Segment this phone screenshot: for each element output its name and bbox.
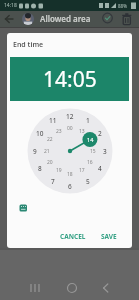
staticText: 22 bbox=[47, 136, 53, 143]
button[interactable] bbox=[19, 204, 28, 212]
staticText: 9 bbox=[33, 147, 37, 156]
staticText: SAVE bbox=[101, 232, 117, 241]
staticText: 17 bbox=[79, 167, 85, 174]
button[interactable]: SAVE bbox=[96, 230, 122, 243]
staticText: 8 bbox=[38, 164, 42, 173]
button[interactable]: CANCEL bbox=[57, 230, 89, 243]
staticText: 12 bbox=[66, 112, 74, 121]
button[interactable]: 14:05 bbox=[10, 57, 129, 101]
staticText: 14:18 bbox=[4, 2, 17, 9]
button[interactable] bbox=[101, 12, 114, 25]
button[interactable] bbox=[99, 281, 113, 295]
staticText: Allowed area bbox=[40, 13, 91, 24]
staticText: 19 bbox=[56, 167, 62, 174]
staticText: 13 bbox=[79, 128, 85, 135]
staticText: 2 bbox=[98, 129, 102, 138]
staticText: 16 bbox=[87, 159, 93, 166]
staticText: 15 bbox=[90, 148, 96, 155]
staticText: 23 bbox=[56, 128, 62, 135]
staticText: 11 bbox=[49, 116, 57, 125]
button[interactable] bbox=[2, 12, 16, 26]
staticText: 21 bbox=[44, 148, 50, 155]
staticText: 88% bbox=[118, 3, 127, 9]
staticText: 14:05 bbox=[43, 65, 97, 94]
staticText: 7 bbox=[51, 177, 55, 186]
staticText: 3 bbox=[103, 147, 107, 156]
button[interactable] bbox=[28, 281, 42, 295]
staticText: 1 bbox=[86, 116, 90, 125]
staticText: 18 bbox=[67, 171, 73, 178]
staticText: CANCEL bbox=[60, 232, 86, 241]
button[interactable] bbox=[65, 281, 79, 295]
staticText: 6 bbox=[68, 182, 72, 191]
staticText: 10 bbox=[36, 129, 44, 138]
button[interactable] bbox=[120, 12, 134, 26]
staticText: 14 bbox=[87, 136, 94, 143]
staticText: End time bbox=[13, 40, 43, 50]
staticText: 5 bbox=[86, 177, 90, 186]
staticText: 00 bbox=[67, 125, 73, 132]
staticText: 4 bbox=[98, 164, 102, 173]
staticText: 20 bbox=[47, 159, 53, 166]
